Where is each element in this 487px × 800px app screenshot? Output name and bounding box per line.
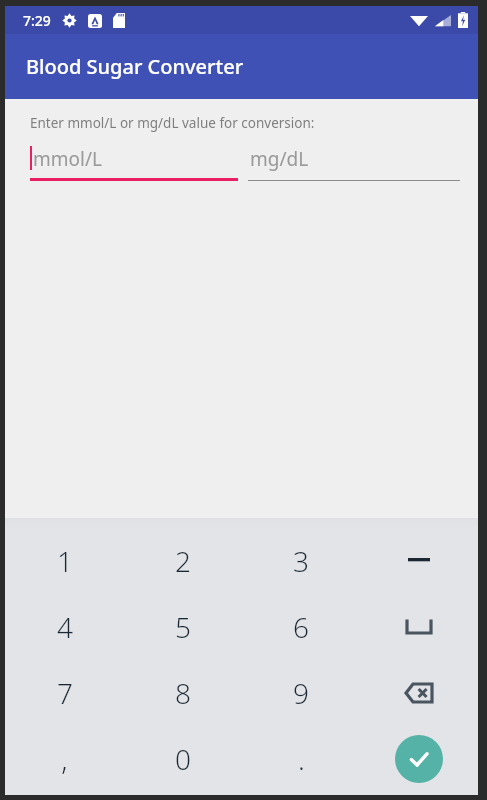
staticText: Enter mmol/L or mg/dL value for conversi… (30, 114, 315, 132)
staticText: mg/dL (250, 146, 309, 172)
button[interactable]: mmol/L (30, 141, 238, 181)
button[interactable]: 4 (5, 594, 124, 660)
staticText: . (298, 740, 305, 778)
staticText: 7:29 (23, 11, 51, 30)
button[interactable]: Backspace (360, 660, 478, 726)
staticText: 3 (293, 542, 309, 580)
button[interactable]: 3 (242, 528, 360, 594)
staticText: 6 (293, 608, 309, 646)
button[interactable]: 7 (5, 660, 124, 726)
staticText: 4 (57, 608, 73, 646)
button[interactable]: . (242, 726, 360, 792)
staticText: Blood Sugar Converter (26, 53, 244, 80)
staticText: 9 (293, 674, 309, 712)
staticText: 5 (175, 608, 191, 646)
button[interactable]: 8 (124, 660, 242, 726)
button[interactable]: Minus (360, 528, 478, 594)
button[interactable]: mg/dL (248, 141, 460, 181)
button[interactable]: 6 (242, 594, 360, 660)
button[interactable]: 9 (242, 660, 360, 726)
button[interactable]: Space (360, 594, 478, 660)
staticText: 8 (175, 674, 191, 712)
button[interactable]: Done (360, 726, 478, 792)
staticText: , (61, 740, 68, 778)
staticText: 2 (175, 542, 191, 580)
button[interactable]: 2 (124, 528, 242, 594)
button[interactable]: 1 (5, 528, 124, 594)
button[interactable]: 5 (124, 594, 242, 660)
button[interactable]: 0 (124, 726, 242, 792)
staticText: 7 (57, 674, 73, 712)
staticText: mmol/L (33, 146, 102, 172)
button[interactable]: , (5, 726, 124, 792)
staticText: 0 (175, 740, 191, 778)
staticText: 1 (57, 542, 73, 580)
